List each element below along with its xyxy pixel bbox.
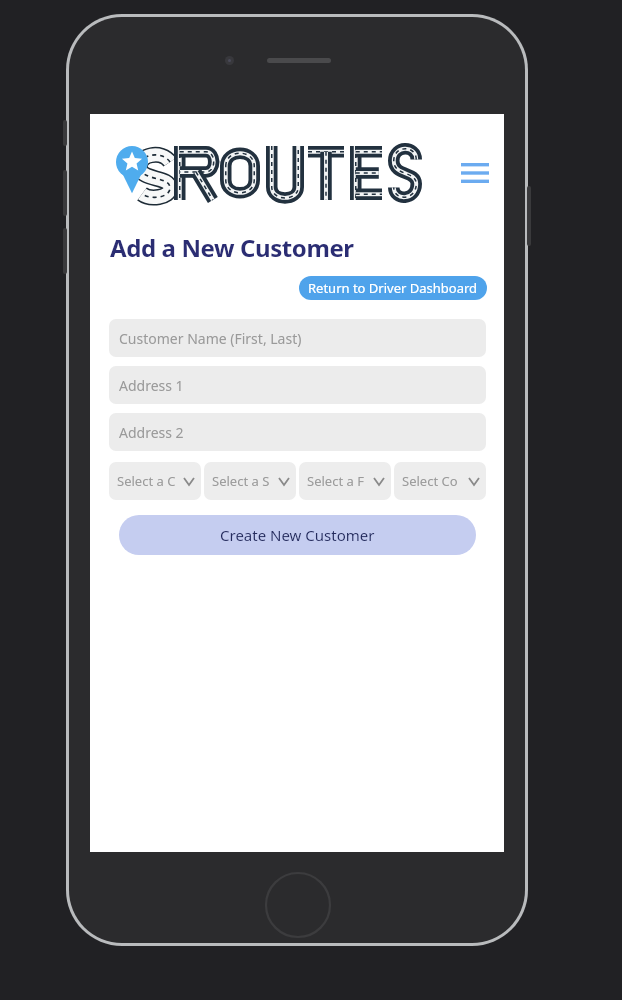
button[interactable]: Customer Name (First, Last) [109, 319, 486, 357]
button[interactable]: Return to Driver Dashboard [299, 276, 487, 300]
staticText: Select a F [307, 472, 364, 490]
button[interactable]: Create New Customer [119, 515, 476, 555]
staticText: Create New Customer [220, 525, 375, 545]
button[interactable]: Select a C [109, 462, 201, 500]
staticText: Select a S [212, 472, 270, 490]
button[interactable]: Open menu [452, 150, 498, 196]
button[interactable]: Select Co [394, 462, 486, 500]
button[interactable]: Select a S [204, 462, 296, 500]
button[interactable]: Address 1 [109, 366, 486, 404]
staticText: Address 1 [119, 376, 184, 395]
staticText: Select Co [402, 472, 458, 490]
staticText: Customer Name (First, Last) [119, 329, 302, 348]
staticText: Return to Driver Dashboard [308, 279, 478, 297]
button[interactable]: Select a F [299, 462, 391, 500]
button[interactable]: Address 2 [109, 413, 486, 451]
staticText: Select a C [117, 472, 176, 490]
staticText: Address 2 [119, 423, 184, 442]
staticText: Add a New Customer [110, 231, 354, 264]
